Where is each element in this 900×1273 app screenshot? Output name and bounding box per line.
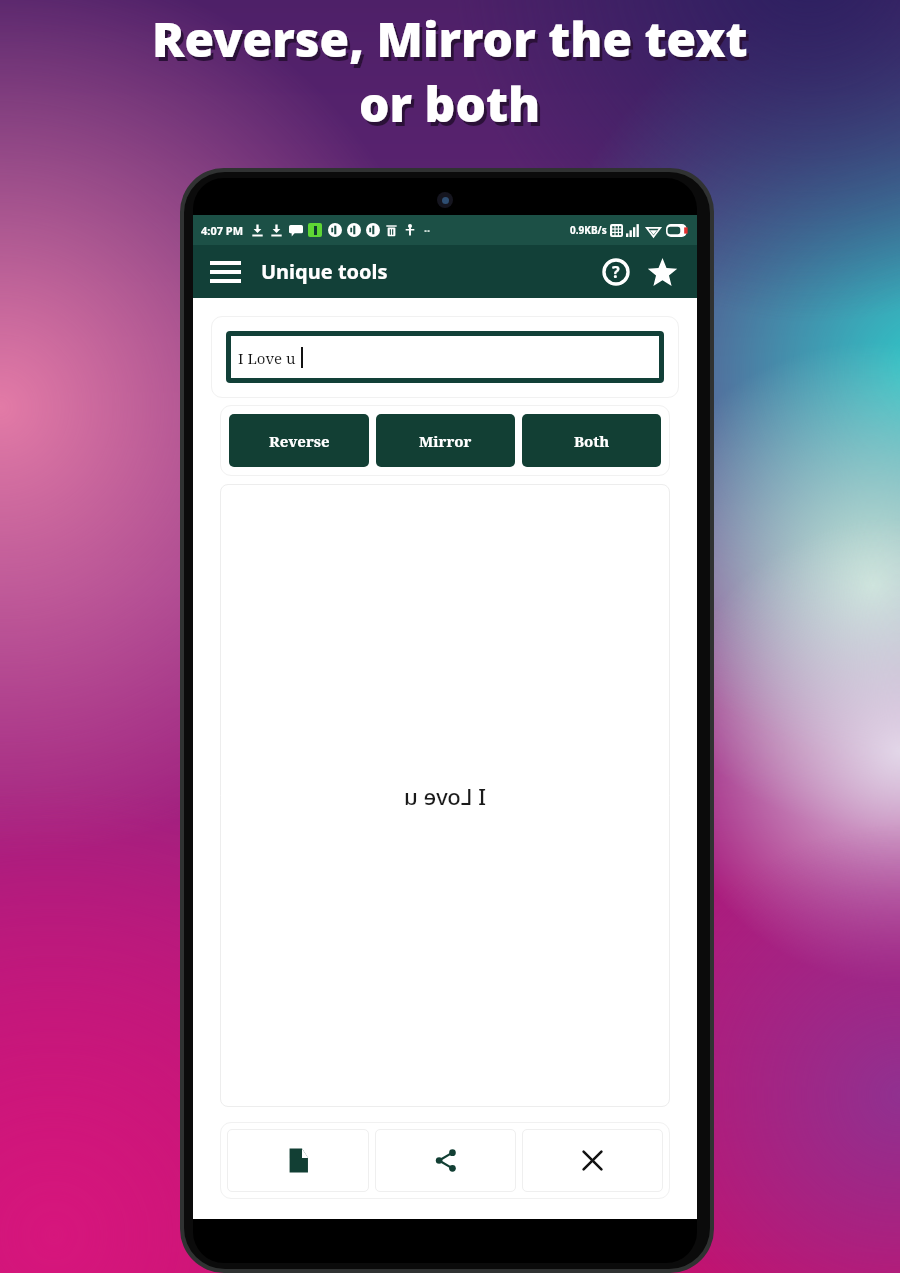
- staticText: Mirror: [419, 431, 472, 451]
- staticText: or both: [362, 75, 544, 140]
- staticText: I Love u: [404, 781, 486, 811]
- button[interactable]: Copy to clipboard: [227, 1129, 369, 1192]
- staticText: Reverse: [269, 431, 330, 451]
- button[interactable]: Help: [594, 250, 638, 294]
- button[interactable]: I Love u: [231, 336, 659, 378]
- staticText: ?: [612, 261, 620, 283]
- staticText: or both: [359, 71, 541, 136]
- staticText: Reverse, Mirror the text: [155, 10, 751, 75]
- staticText: 4:07 PM: [201, 223, 244, 238]
- staticText: Unique tools: [261, 258, 388, 285]
- button[interactable]: Rate app: [640, 250, 684, 294]
- button[interactable]: Open navigation menu: [204, 251, 246, 293]
- button[interactable]: Clear: [522, 1129, 663, 1192]
- staticText: ··: [424, 223, 431, 238]
- staticText: I Love u: [238, 348, 296, 368]
- staticText: Reverse, Mirror the text: [152, 6, 748, 71]
- button[interactable]: Reverse: [229, 414, 369, 467]
- staticText: 0.9KB/s: [570, 223, 607, 237]
- button[interactable]: Mirror: [376, 414, 515, 467]
- staticText: Both: [574, 431, 610, 451]
- button[interactable]: Share: [375, 1129, 516, 1192]
- button[interactable]: Both: [522, 414, 661, 467]
